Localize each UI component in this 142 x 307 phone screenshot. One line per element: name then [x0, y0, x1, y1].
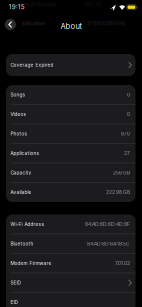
staticText: 870 [121, 131, 130, 137]
staticText: Model Number [23, 2, 57, 7]
staticText: Videos [10, 111, 26, 117]
staticText: 0 [127, 111, 130, 117]
staticText: Photos [10, 131, 27, 137]
staticText: Bluetooth [10, 241, 33, 247]
staticText: Modem Firmware [10, 260, 51, 266]
staticText: Capacity [10, 170, 31, 176]
staticText: Wi-Fi Address [10, 221, 44, 227]
staticText: 7.01.02 [115, 260, 130, 266]
staticText: Available [10, 189, 31, 195]
staticText: 84:AD:8D:6D:4D:9F [85, 221, 130, 227]
staticText: Coverage Expired [10, 62, 53, 68]
button[interactable]: SEID [6, 273, 135, 292]
staticText: Applications [10, 150, 39, 156]
staticText: Songs [10, 92, 25, 98]
staticText: 256 GB [113, 170, 130, 176]
staticText: 27 [124, 150, 130, 156]
staticText: MQ233 [84, 2, 101, 7]
staticText: 84:AD:8D:6A:18:5C [87, 241, 130, 247]
button[interactable]: Back [5, 19, 16, 30]
staticText: 19:15 [9, 3, 25, 11]
staticText: ST2NGC0N5Y8L [87, 21, 126, 26]
staticText: al Number [22, 21, 46, 26]
staticText: 222.98 GB [106, 189, 130, 195]
staticText: About [60, 22, 81, 31]
staticText: 0 [127, 92, 130, 98]
button[interactable]: Coverage Expired [6, 54, 135, 76]
staticText: EID [10, 299, 17, 305]
staticText: SEID [10, 280, 20, 286]
